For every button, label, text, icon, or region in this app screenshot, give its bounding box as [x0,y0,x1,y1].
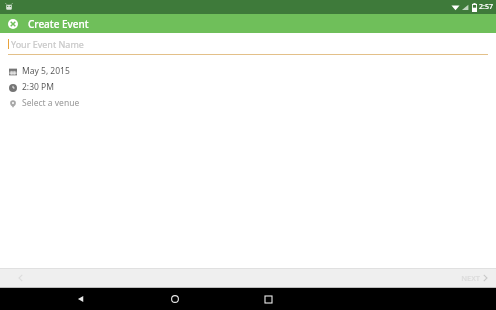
staticText: NEXT [461,273,480,283]
button[interactable]: Close [6,17,20,31]
button[interactable]: Recent apps [255,288,281,310]
button[interactable]: Your Event Name [8,38,488,55]
button[interactable]: Home [162,288,188,310]
button[interactable]: Back [68,288,94,310]
button[interactable]: 2:30 PM [0,79,496,95]
button[interactable]: May 5, 2015 [0,63,496,79]
staticText: Your Event Name [11,38,84,50]
button[interactable]: Select a venue [0,95,496,111]
staticText: May 5, 2015 [22,65,70,77]
staticText: 2:30 PM [22,81,54,93]
staticText: 2:57 [479,2,493,12]
staticText: Select a venue [22,97,80,109]
button[interactable]: NEXT [453,269,496,287]
staticText: Create Event [28,17,89,31]
